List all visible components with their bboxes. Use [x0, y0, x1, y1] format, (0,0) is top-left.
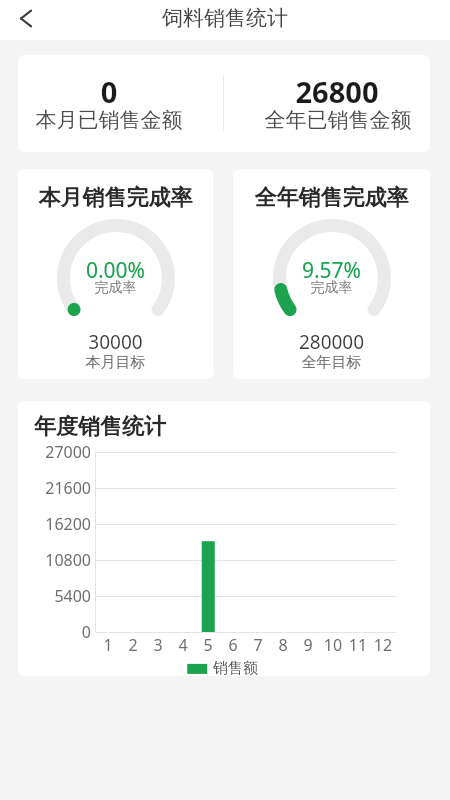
staticText: 完成率 — [18, 279, 213, 297]
staticText: 11 — [338, 634, 378, 656]
staticText: 6 — [213, 634, 253, 656]
staticText: 4 — [163, 634, 203, 656]
staticText: 2 — [113, 634, 153, 656]
staticText: 0.00% — [18, 256, 213, 285]
staticText: 饲料销售统计 — [75, 5, 375, 31]
button[interactable]: 本月销售完成率 — [18, 169, 213, 379]
staticText: 完成率 — [233, 279, 430, 297]
staticText: 0 — [19, 72, 199, 111]
staticText: 8 — [263, 634, 303, 656]
staticText: 本月已销售金额 — [19, 107, 199, 133]
staticText: 280000 — [233, 329, 430, 355]
staticText: 10800 — [26, 549, 91, 571]
staticText: 本月销售完成率 — [18, 184, 213, 212]
staticText: 5400 — [26, 585, 91, 607]
button[interactable]: Back — [8, 0, 44, 36]
staticText: 全年销售完成率 — [233, 184, 430, 212]
staticText: 21600 — [26, 477, 91, 499]
staticText: 27000 — [26, 441, 91, 463]
staticText: 本月目标 — [18, 353, 213, 372]
staticText: 10 — [313, 634, 353, 656]
staticText: 16200 — [26, 513, 91, 535]
staticText: 9.57% — [233, 256, 430, 285]
button[interactable]: 26800 — [224, 55, 430, 152]
staticText: 9 — [288, 634, 328, 656]
staticText: 30000 — [18, 329, 213, 355]
button[interactable]: 全年销售完成率 — [233, 169, 430, 379]
staticText: 全年目标 — [233, 353, 430, 372]
staticText: 全年已销售金额 — [248, 107, 428, 133]
button[interactable]: 0 — [18, 55, 223, 152]
staticText: 年度销售统计 — [34, 413, 166, 441]
staticText: 26800 — [247, 72, 427, 111]
staticText: 12 — [363, 634, 403, 656]
staticText: 5 — [188, 634, 228, 656]
staticText: 销售额 — [213, 659, 258, 676]
staticText: 1 — [88, 634, 128, 656]
staticText: 7 — [238, 634, 278, 656]
staticText: 3 — [138, 634, 178, 656]
staticText: 0 — [26, 621, 91, 643]
